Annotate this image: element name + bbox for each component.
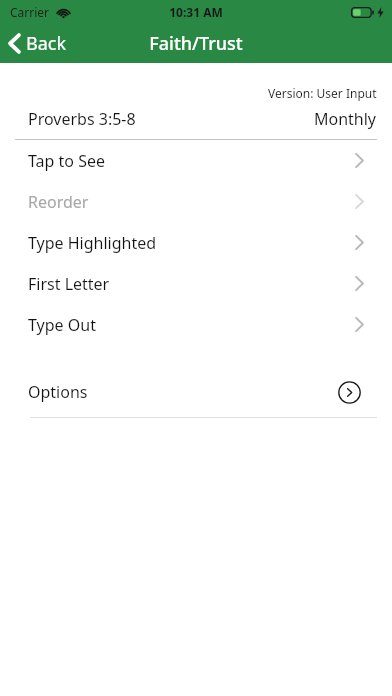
button[interactable]: Back <box>0 27 77 60</box>
button[interactable]: Tap to See <box>0 140 392 181</box>
other: Open options <box>338 381 361 404</box>
staticText: Monthly <box>314 108 377 130</box>
staticText: Type Highlighted <box>28 232 157 254</box>
staticText: Options <box>28 381 88 403</box>
button[interactable]: Type Highlighted <box>0 222 392 263</box>
staticText: Faith/Trust <box>149 31 243 56</box>
staticText: Carrier <box>10 4 50 20</box>
staticText: 10:31 AM <box>169 4 223 20</box>
button[interactable]: Type Out <box>0 304 392 345</box>
staticText: Tap to See <box>28 150 106 172</box>
button[interactable]: Reorder <box>0 181 392 222</box>
staticText: Type Out <box>28 314 96 336</box>
button[interactable]: First Letter <box>0 263 392 304</box>
staticText: Proverbs 3:5-8 <box>28 108 136 130</box>
staticText: First Letter <box>28 273 110 295</box>
staticText: Reorder <box>28 191 89 213</box>
button[interactable]: Options <box>0 376 392 408</box>
staticText: Version: User Input <box>268 85 377 101</box>
staticText: Back <box>26 31 67 56</box>
